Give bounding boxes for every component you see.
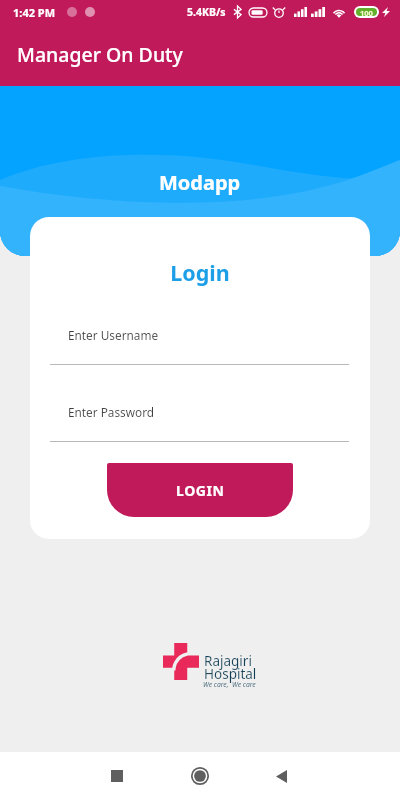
- staticText: 100: [360, 8, 373, 16]
- button[interactable]: LOGIN: [107, 463, 293, 517]
- staticText: Rajagiri: [204, 652, 252, 670]
- staticText: Manager On Duty: [17, 41, 183, 68]
- staticText: Hospital: [204, 665, 257, 683]
- button[interactable]: Recent apps: [93, 752, 141, 800]
- staticText: Enter Username: [68, 327, 159, 343]
- staticText: 5.4KB/s: [187, 5, 226, 19]
- staticText: Login: [170, 258, 230, 287]
- staticText: Enter Password: [68, 404, 155, 420]
- staticText: LOGIN: [176, 481, 225, 500]
- button[interactable]: Back: [257, 752, 305, 800]
- staticText: Modapp: [159, 169, 241, 196]
- staticText: We care, We care: [203, 680, 256, 689]
- staticText: 1:42 PM: [13, 5, 56, 20]
- button[interactable]: Home: [176, 752, 224, 800]
